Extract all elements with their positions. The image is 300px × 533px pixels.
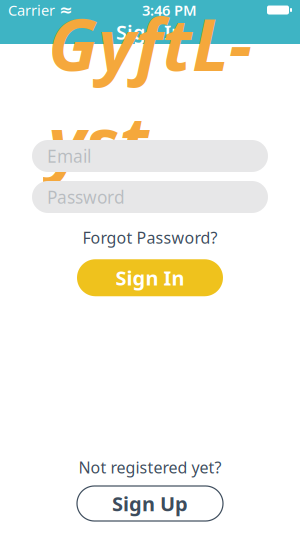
button[interactable]: Sign Up [77,486,223,521]
staticText: Password [47,185,125,208]
staticText: 3:46 PM [142,0,197,20]
staticText: Sign In [116,19,184,45]
staticText: Carrier [8,0,55,20]
staticText: Email [47,144,91,167]
button[interactable]: Forgot Password? [74,224,225,251]
staticText: ≈ [59,1,72,19]
staticText: Sign Up [112,490,188,517]
staticText: GyftLyst [48,0,252,190]
staticText: Forgot Password? [82,227,217,248]
button[interactable]: Sign In [77,259,223,296]
staticText: Sign In [115,264,184,291]
staticText: Not registered yet? [78,457,221,478]
button[interactable]: Email [32,140,268,172]
button[interactable]: Password [32,181,268,213]
